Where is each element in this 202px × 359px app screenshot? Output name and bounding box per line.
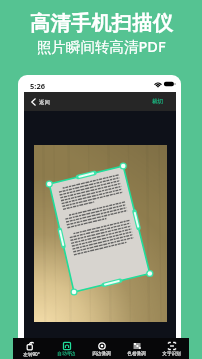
staticText: 色相微调 [127,351,146,357]
staticText: 照片瞬间转高清PDF [37,36,166,56]
staticText: 四边微调 [92,351,111,357]
staticText: 返回 [39,99,50,106]
button[interactable]: 色相微调 [119,338,154,359]
staticText: 5:26 [30,81,45,91]
staticText: 文字识别 [162,351,181,357]
button[interactable]: 左转90° [13,338,49,359]
button[interactable]: 四边微调 [84,338,119,359]
button[interactable]: 自动寻边 [49,338,84,359]
staticText: 高清手机扫描仪 [30,11,173,36]
button[interactable]: 返回 [29,95,52,109]
button[interactable]: 文字识别 [154,338,189,359]
button[interactable]: 裁切 [144,95,176,108]
staticText: 左转90° [23,351,40,357]
staticText: 自动寻边 [57,351,76,357]
staticText: 裁切 [152,98,164,105]
